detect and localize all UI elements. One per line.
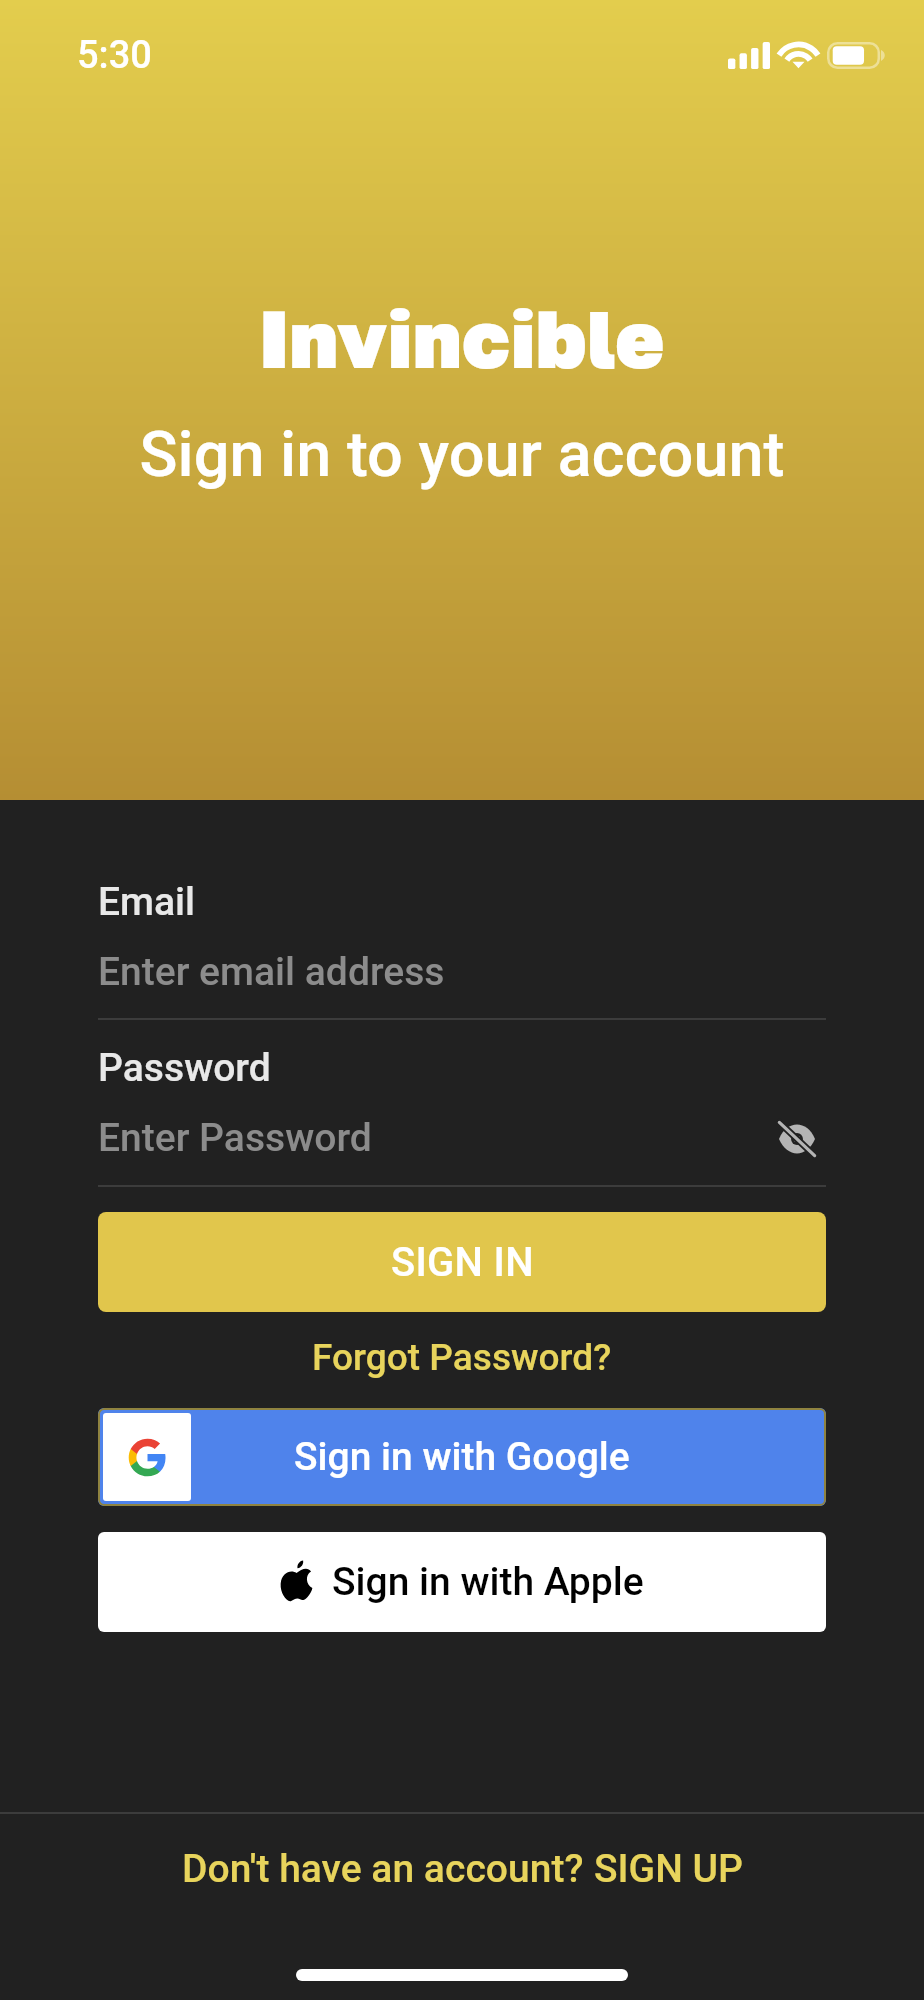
staticText: SIGN UP (594, 1846, 743, 1892)
button[interactable]: Sign in with Apple (98, 1532, 826, 1632)
staticText: Password (98, 1045, 271, 1091)
button[interactable]: Sign in with Google (98, 1408, 826, 1506)
button[interactable]: Don't have an account? (0, 1814, 924, 1924)
staticText: Don't have an account? (182, 1846, 594, 1892)
button[interactable]: SIGN IN (98, 1212, 826, 1312)
staticText: 5:30 (77, 33, 152, 78)
staticText: SIGN IN (391, 1239, 534, 1286)
staticText: Sign in with Google (294, 1434, 630, 1480)
staticText: Forgot Password? (312, 1336, 612, 1379)
staticText: Sign in with Apple (332, 1559, 644, 1605)
staticText: Enter Password (98, 1115, 372, 1161)
staticText: Enter email address (98, 949, 445, 995)
button[interactable]: Forgot Password? (300, 1330, 624, 1385)
button[interactable]: Show password (763, 1105, 831, 1173)
staticText: Invincible (260, 290, 665, 386)
staticText: Email (98, 879, 196, 925)
staticText: Sign in to your account (139, 418, 785, 492)
